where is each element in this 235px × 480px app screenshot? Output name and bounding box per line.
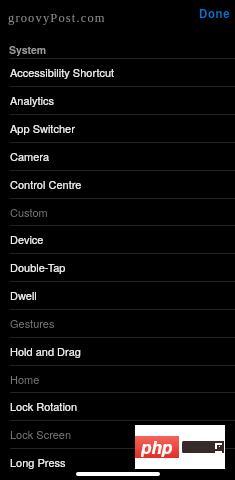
staticText: Analytics [10, 92, 54, 108]
button[interactable]: Device [0, 225, 235, 253]
button[interactable]: Lock Rotation [0, 392, 235, 420]
staticText: Double-Tap [10, 259, 66, 275]
staticText: Done [199, 5, 231, 21]
button[interactable]: Analytics [0, 86, 235, 114]
button[interactable]: Camera [0, 142, 235, 170]
staticText: Custom [10, 204, 48, 220]
staticText: Control Centre [10, 176, 82, 192]
staticText: Accessibility Shortcut [10, 64, 115, 80]
staticText: Long Press [10, 454, 66, 470]
staticText: Lock Rotation [10, 398, 78, 414]
button[interactable]: App Switcher [0, 114, 235, 142]
staticText: System [9, 42, 47, 57]
staticText: Hold and Drag [10, 343, 81, 359]
button[interactable]: Done [191, 0, 235, 26]
button[interactable]: Control Centre [0, 170, 235, 198]
staticText: Lock Screen [10, 426, 72, 442]
button[interactable]: Custom [0, 198, 235, 226]
button[interactable]: Dwell [0, 281, 235, 309]
staticText: Camera [10, 148, 50, 164]
button[interactable]: Accessibility Shortcut [0, 58, 235, 86]
button[interactable]: Gestures [0, 309, 235, 337]
button[interactable]: Double-Tap [0, 253, 235, 281]
staticText: Gestures [10, 315, 55, 331]
button[interactable]: php advert [135, 425, 225, 469]
button[interactable]: Long Press [0, 448, 235, 476]
button[interactable]: Hold and Drag [0, 337, 235, 365]
button[interactable]: Lock Screen [0, 420, 235, 448]
staticText: groovyPost.com [8, 11, 106, 25]
staticText: Dwell [10, 287, 37, 303]
staticText: App Switcher [10, 120, 75, 136]
staticText: php [141, 435, 173, 457]
button[interactable]: Home [0, 365, 235, 393]
staticText: Device [10, 231, 44, 247]
staticText: Home [10, 371, 40, 387]
